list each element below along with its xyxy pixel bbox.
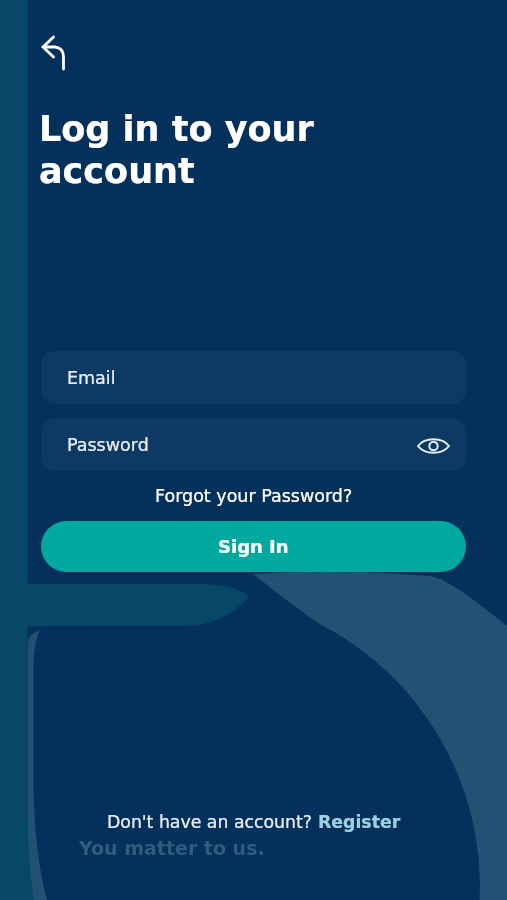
button[interactable]: Email <box>41 351 466 404</box>
button[interactable] <box>28 24 78 80</box>
staticText: Forgot your Password? <box>155 486 353 506</box>
button[interactable]: Forgot your Password? <box>155 486 353 506</box>
staticText: Log in to your account <box>39 109 314 191</box>
button[interactable]: Password <box>41 418 466 471</box>
staticText: Email <box>67 368 116 388</box>
button[interactable]: Register <box>318 812 401 832</box>
staticText: Sign In <box>218 536 289 557</box>
staticText: Register <box>318 812 401 832</box>
button[interactable]: Sign In <box>41 521 466 572</box>
staticText: Password <box>67 435 149 455</box>
staticText: Don't have an account? <box>107 812 318 832</box>
staticText: You matter to us. <box>79 837 265 859</box>
